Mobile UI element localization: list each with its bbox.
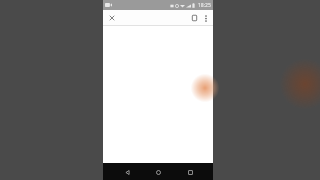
button[interactable]: Back [119, 164, 135, 180]
button[interactable]: Recent apps [182, 164, 198, 180]
button[interactable]: Close [106, 12, 118, 24]
button[interactable]: Tabs [188, 12, 200, 24]
staticText: 18:25 [198, 2, 211, 9]
button[interactable]: More options [200, 12, 212, 24]
button[interactable]: Home [150, 164, 166, 180]
